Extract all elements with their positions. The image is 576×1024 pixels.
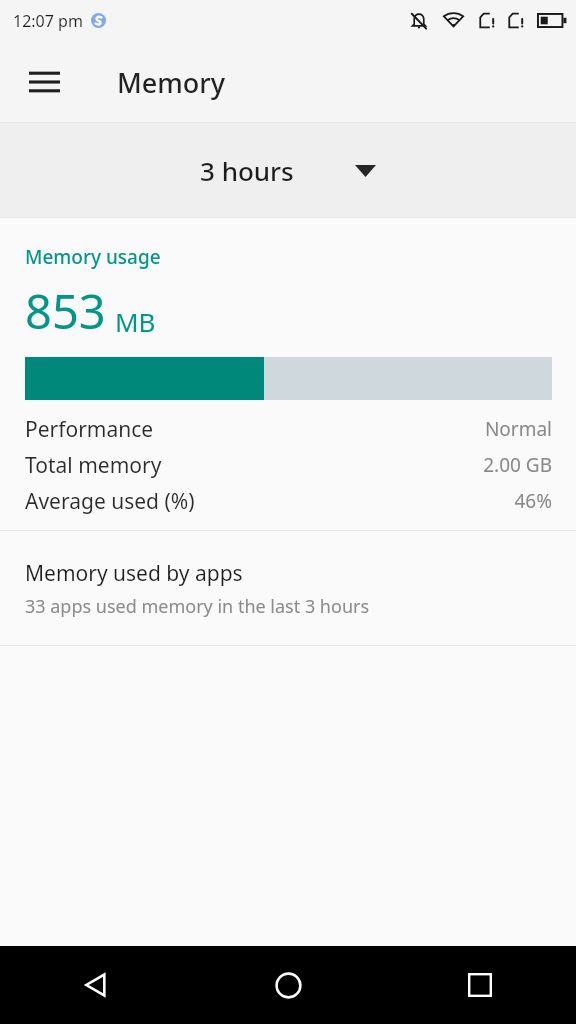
staticText: Memory — [117, 64, 226, 101]
staticText: 33 apps used memory in the last 3 hours — [25, 594, 370, 619]
button[interactable]: Open navigation menu — [16, 54, 72, 110]
staticText: 3 hours — [200, 153, 294, 188]
staticText: Memory usage — [25, 244, 161, 270]
staticText: Performance — [25, 415, 154, 444]
button[interactable]: Memory used by apps — [0, 531, 576, 645]
staticText: Memory used by apps — [25, 559, 243, 588]
staticText: 46% — [514, 488, 552, 514]
button[interactable]: 3 hours — [0, 123, 576, 218]
button[interactable]: Back — [0, 946, 192, 1024]
button[interactable]: Recent apps — [384, 946, 576, 1024]
staticText: Average used (%) — [25, 487, 195, 516]
staticText: 853 — [25, 279, 106, 343]
staticText: 2.00 GB — [483, 452, 552, 478]
staticText: 12:07 pm — [13, 10, 83, 32]
staticText: MB — [115, 304, 156, 339]
staticText: Normal — [484, 416, 552, 442]
staticText: Total memory — [25, 451, 162, 480]
button[interactable]: Home — [192, 946, 384, 1024]
